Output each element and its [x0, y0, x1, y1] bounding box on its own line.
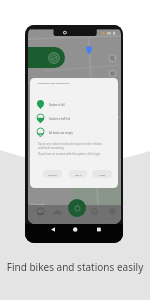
- button[interactable]: Login: [92, 170, 112, 178]
- staticText: Station is half full: [49, 117, 70, 121]
- button[interactable]: Station is half full: [30, 112, 118, 125]
- staticText: Map: [38, 216, 43, 219]
- staticText: Find bikes and docks easily: [38, 81, 70, 84]
- staticText: Tutorial: [48, 173, 57, 176]
- button[interactable]: Bike share brand: [28, 47, 65, 68]
- staticText: Login: [99, 173, 106, 176]
- staticText: Tap on any station to view the exact num…: [38, 142, 102, 150]
- staticText: Station is full: [49, 103, 65, 107]
- button[interactable]: Station is full: [30, 98, 118, 111]
- button[interactable]: Search: [108, 54, 117, 63]
- button[interactable]: My location: [108, 69, 117, 78]
- button[interactable]: Map: [31, 208, 49, 219]
- staticText: Find bikes and stations easily: [0, 260, 150, 274]
- staticText: Account: [107, 216, 117, 219]
- staticText: If you have an account with this system,…: [38, 152, 101, 156]
- staticText: Bike: [55, 216, 60, 219]
- staticText: Got it: [75, 173, 82, 176]
- button[interactable]: Bike: [48, 208, 66, 219]
- button[interactable]: Account: [103, 208, 121, 219]
- staticText: All docks are empty: [49, 131, 73, 135]
- staticText: Google: [31, 202, 46, 208]
- button[interactable]: Scan to unlock bike: [68, 199, 86, 217]
- button[interactable]: All docks are empty: [30, 126, 118, 139]
- button[interactable]: Tutorial: [43, 170, 62, 178]
- button[interactable]: Info: [85, 208, 103, 219]
- button[interactable]: Got it: [69, 170, 87, 178]
- staticText: Info: [92, 216, 97, 219]
